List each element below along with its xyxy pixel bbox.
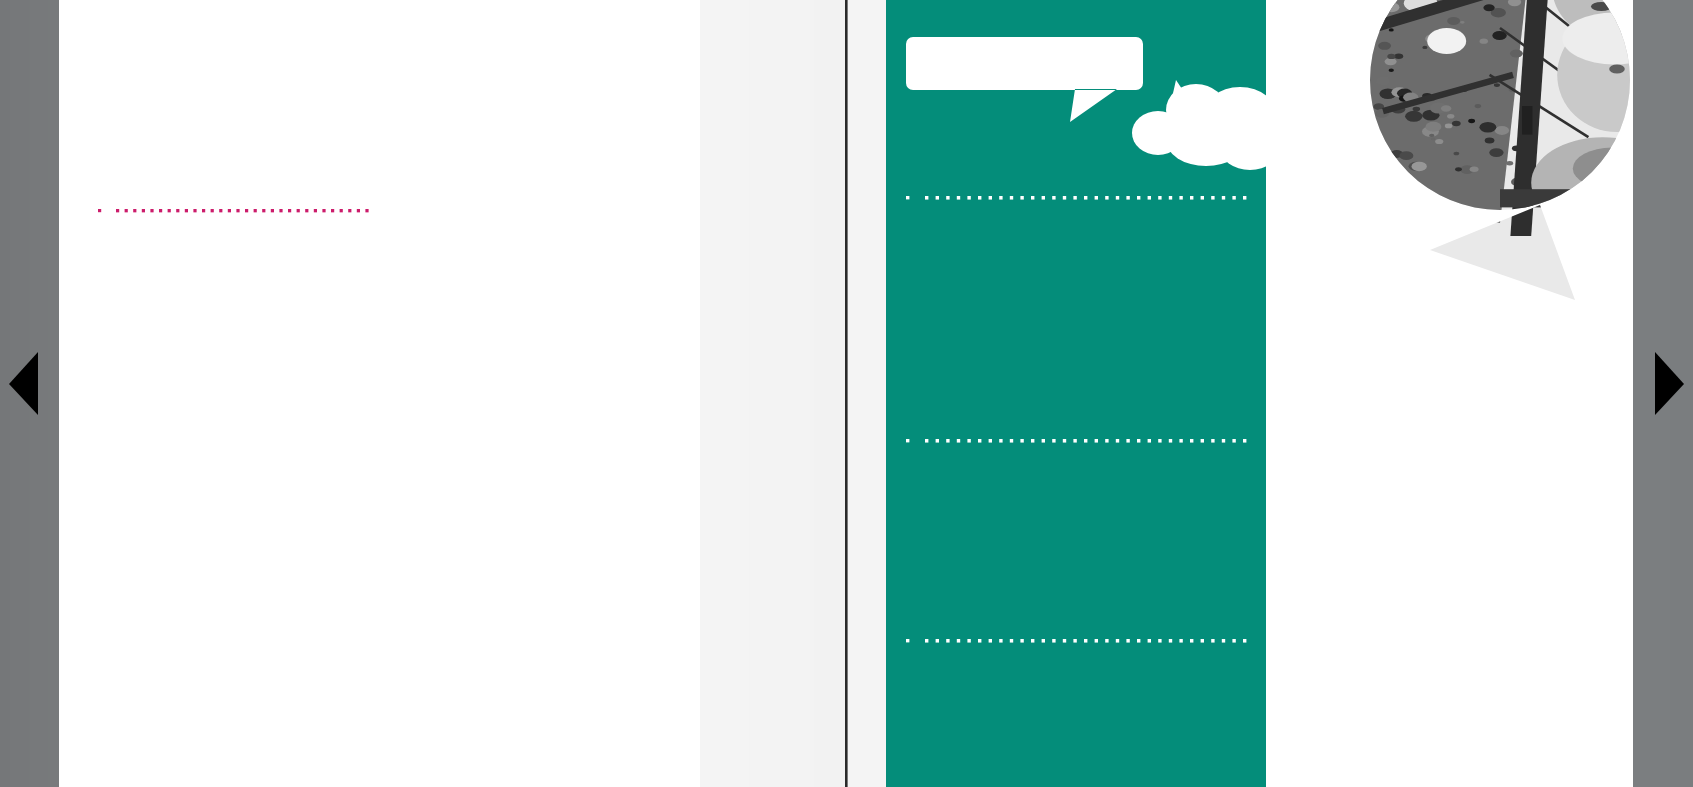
button[interactable]: Book page spread: [0, 0, 1693, 787]
